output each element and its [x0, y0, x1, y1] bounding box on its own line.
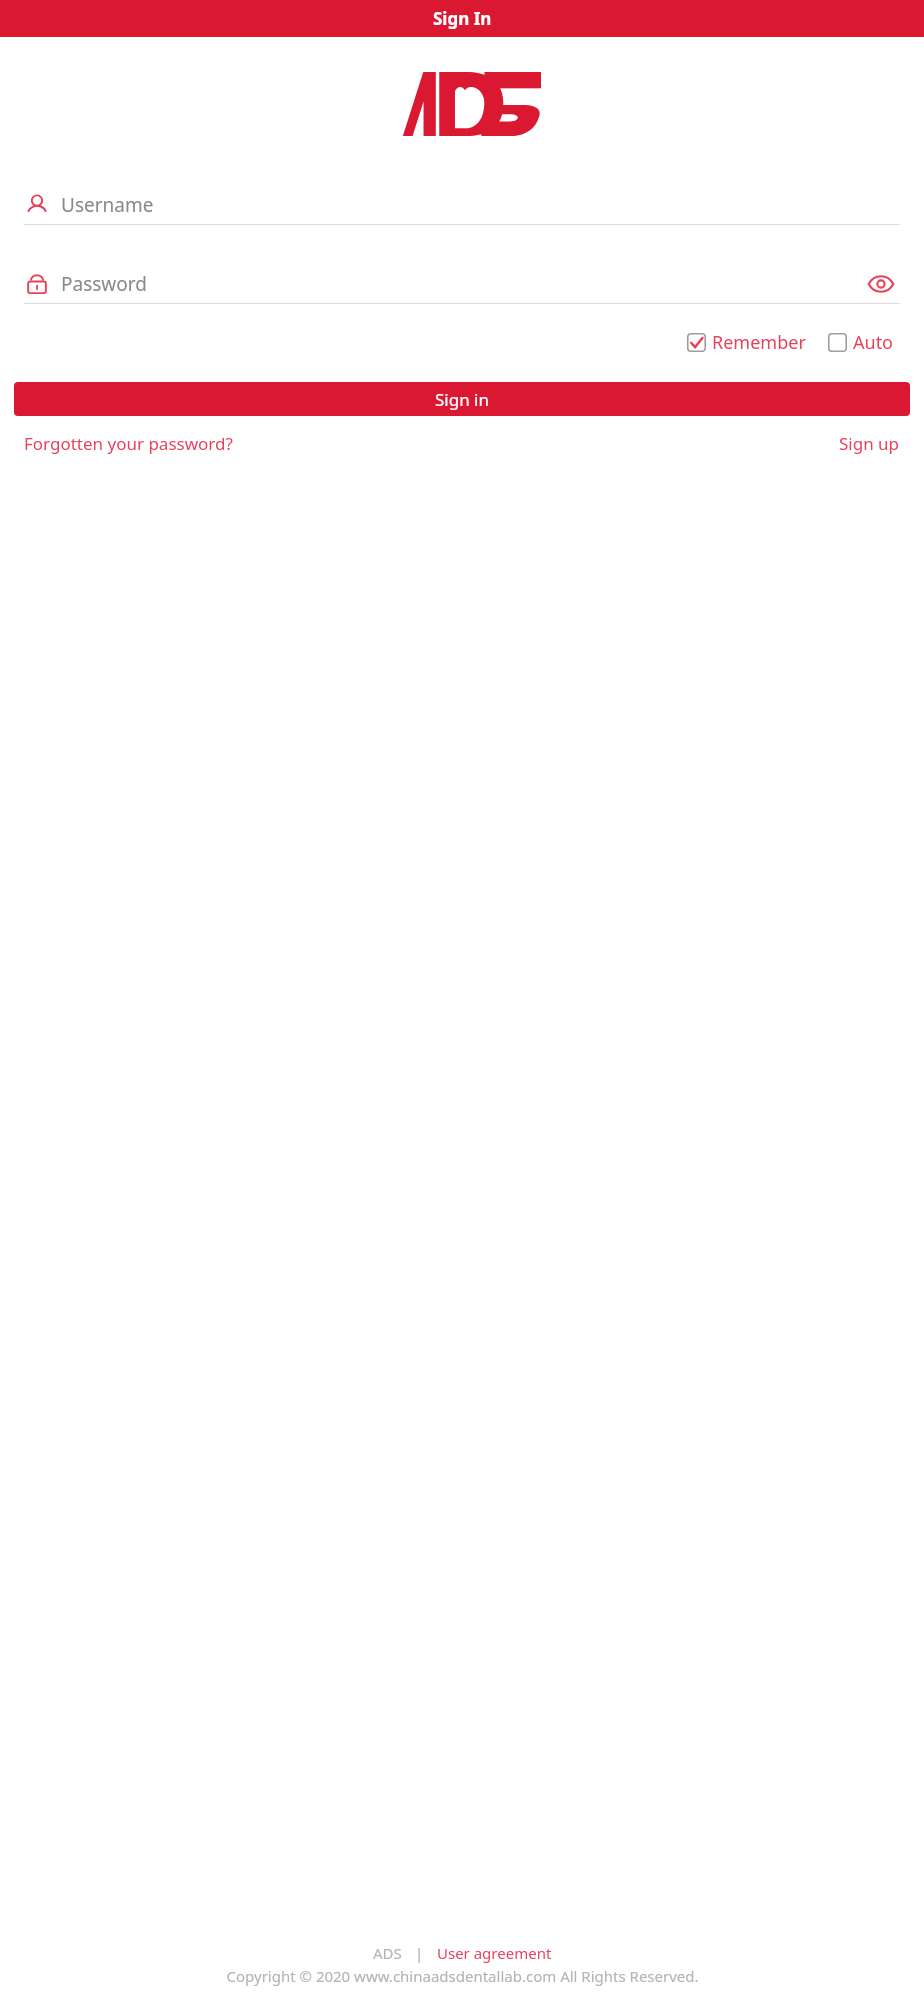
staticText: Sign in — [435, 388, 489, 411]
button[interactable]: Password — [24, 265, 900, 303]
button[interactable]: Forgotten your password? — [24, 432, 233, 455]
button[interactable]: Sign up — [839, 432, 900, 455]
staticText: Password — [61, 271, 147, 297]
staticText: Forgotten your password? — [24, 432, 233, 455]
staticText: User agreement — [437, 1943, 552, 1963]
staticText: Username — [61, 192, 154, 218]
staticText: | — [415, 1943, 424, 1963]
button[interactable]: User agreement — [437, 1943, 552, 1963]
staticText: Sign up — [839, 432, 900, 455]
button[interactable]: Sign in — [14, 382, 910, 416]
button[interactable]: Show password — [862, 265, 900, 303]
staticText: Copyright © 2020 www.chinaadsdentallab.c… — [226, 1966, 699, 1986]
staticText: Auto — [853, 330, 894, 355]
staticText: Remember — [712, 330, 806, 355]
button[interactable]: ADS — [373, 1943, 402, 1963]
button[interactable]: Username — [24, 186, 900, 224]
staticText: Sign In — [433, 7, 492, 30]
button[interactable]: Remember — [683, 326, 810, 359]
staticText: ADS — [373, 1943, 402, 1963]
button[interactable]: Auto — [824, 326, 898, 359]
